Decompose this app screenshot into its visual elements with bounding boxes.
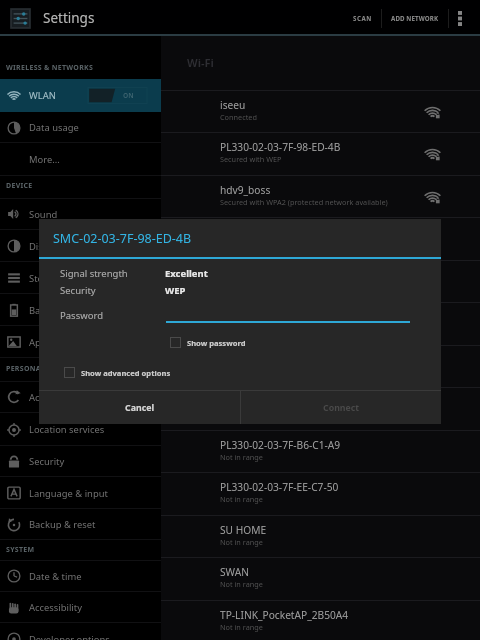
staticText: hdv9_boss xyxy=(220,183,271,197)
button[interactable]: Settings xyxy=(9,7,32,30)
button[interactable]: dlink xyxy=(161,345,480,388)
staticText: PERSONAL xyxy=(6,364,46,374)
button[interactable]: SMC-WPS-A3B2 xyxy=(161,387,480,430)
staticText: Developer options xyxy=(29,633,110,640)
button[interactable]: Data usage xyxy=(0,112,161,143)
staticText: Apps xyxy=(29,336,52,349)
staticText: Not in range xyxy=(220,579,263,589)
staticText: More... xyxy=(29,153,60,166)
staticText: Password xyxy=(60,309,165,322)
staticText: WEP xyxy=(165,284,186,297)
staticText: Display xyxy=(29,240,62,253)
button[interactable]: Backup & reset xyxy=(0,509,161,540)
staticText: SCAN xyxy=(353,14,372,22)
button[interactable]: Date & time xyxy=(0,560,161,592)
button[interactable]: More options xyxy=(449,0,471,36)
staticText: Accounts xyxy=(29,391,70,404)
button[interactable]: Accounts xyxy=(0,381,161,413)
button[interactable]: ADD NETWORK xyxy=(382,0,448,36)
staticText: Accessibility xyxy=(29,601,82,614)
button[interactable]: Developer options xyxy=(0,623,161,640)
staticText: Connect xyxy=(323,402,360,414)
staticText: Backup & reset xyxy=(29,518,96,531)
staticText: PL330-02-03-7F-B6-6D-44 xyxy=(220,310,341,324)
staticText: PL330-02-03-7F-B6-C1-A9 xyxy=(220,438,341,452)
button[interactable]: PL330-02-03-7F-B6-C1-A9 xyxy=(161,430,480,473)
staticText: SU HOME xyxy=(220,523,267,537)
button[interactable]: SWAN xyxy=(161,557,480,600)
staticText: SYSTEM xyxy=(6,545,35,555)
staticText: DEVICE xyxy=(6,181,33,191)
staticText: Settings xyxy=(43,9,95,27)
staticText: WLAN xyxy=(29,89,56,102)
button[interactable]: TP-LINK_PocketAP_2B50A4 xyxy=(161,600,480,640)
button[interactable]: iseeu xyxy=(161,90,480,133)
button[interactable]: PL330-02-03-7F-B6-6D-44 xyxy=(161,302,480,345)
button[interactable]: hdv9_boss xyxy=(161,175,480,218)
button[interactable]: PL330-02-03-7F-98-ED-4B xyxy=(161,132,480,175)
button[interactable]: More... xyxy=(0,143,161,176)
staticText: Cancel xyxy=(125,402,155,414)
staticText: SMC-02-03-7F-98-ED-4B xyxy=(53,230,192,247)
staticText: Sound xyxy=(29,208,58,221)
button[interactable]: Language & input xyxy=(0,477,161,509)
staticText: Language & input xyxy=(29,487,108,500)
button[interactable]: Storage xyxy=(0,262,161,294)
staticText: Connected xyxy=(220,112,257,122)
button[interactable]: Display xyxy=(0,230,161,262)
staticText: TP-LINK_PocketAP_2B50A4 xyxy=(220,608,349,622)
button[interactable]: Connect xyxy=(241,391,441,424)
staticText: Secured with WPA2 (protected network ava… xyxy=(220,197,388,207)
staticText: Wi-Fi xyxy=(187,55,214,70)
staticText: Security xyxy=(29,455,65,468)
staticText: WIRELESS & NETWORKS xyxy=(6,63,94,73)
staticText: Security xyxy=(60,284,165,297)
button[interactable]: PL330-02-03-7F-EE-C7-50 xyxy=(161,472,480,515)
button[interactable]: SCAN xyxy=(344,0,381,36)
staticText: Show password xyxy=(187,338,246,348)
staticText: iseeu xyxy=(220,98,246,112)
button[interactable]: Show password xyxy=(170,337,246,348)
staticText: ADD NETWORK xyxy=(391,14,439,22)
staticText: Not in range xyxy=(220,622,263,632)
staticText: Battery xyxy=(29,304,62,317)
staticText: Secured with WEP xyxy=(220,154,282,164)
button[interactable]: Cancel xyxy=(39,391,240,424)
button[interactable]: Accessibility xyxy=(0,592,161,623)
button[interactable]: Security xyxy=(0,446,161,477)
staticText: PL330-02-03-7F-98-ED-4B xyxy=(220,140,341,154)
button[interactable]: Apps xyxy=(0,326,161,358)
staticText: Signal strength xyxy=(60,267,165,280)
button[interactable]: Battery xyxy=(0,294,161,326)
button[interactable]: WLAN xyxy=(0,79,161,112)
staticText: Storage xyxy=(29,272,64,285)
button[interactable]: Location services xyxy=(0,413,161,446)
button[interactable]: Sound xyxy=(0,198,161,230)
button[interactable]: SU HOME xyxy=(161,515,480,558)
staticText: Not in range xyxy=(220,494,263,504)
staticText: Not in range xyxy=(220,452,263,462)
staticText: Not in range xyxy=(220,537,263,547)
button[interactable]: RT-G32 xyxy=(161,217,480,260)
staticText: PL330-02-03-7F-EE-C7-50 xyxy=(220,480,339,494)
button[interactable]: SMC-02-03-7F-98-ED-4B xyxy=(161,260,480,303)
staticText: Show advanced options xyxy=(81,368,171,378)
staticText: Date & time xyxy=(29,570,82,583)
staticText: SWAN xyxy=(220,565,249,579)
staticText: Data usage xyxy=(29,121,79,134)
staticText: ON xyxy=(123,91,134,100)
staticText: Excellent xyxy=(165,267,208,280)
staticText: Location services xyxy=(29,423,105,436)
button[interactable]: Show advanced options xyxy=(64,367,171,378)
